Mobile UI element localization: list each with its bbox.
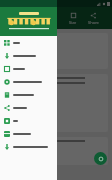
staticText: Size	[69, 20, 77, 25]
button[interactable]	[0, 36, 57, 49]
button[interactable]	[0, 101, 57, 114]
button[interactable]	[0, 127, 57, 140]
button[interactable]	[4, 137, 108, 165]
button[interactable]: Add	[94, 152, 107, 165]
button[interactable]: Share	[85, 11, 102, 26]
button[interactable]	[4, 33, 108, 69]
button[interactable]: Close navigation drawer	[0, 0, 112, 180]
staticText: Share	[88, 20, 99, 25]
button[interactable]	[0, 88, 57, 101]
button[interactable]: Size	[66, 11, 80, 26]
button[interactable]	[4, 74, 108, 132]
button[interactable]	[0, 49, 57, 62]
button[interactable]	[0, 140, 57, 153]
button[interactable]	[0, 62, 57, 75]
button[interactable]	[0, 75, 57, 88]
button[interactable]	[0, 114, 57, 127]
